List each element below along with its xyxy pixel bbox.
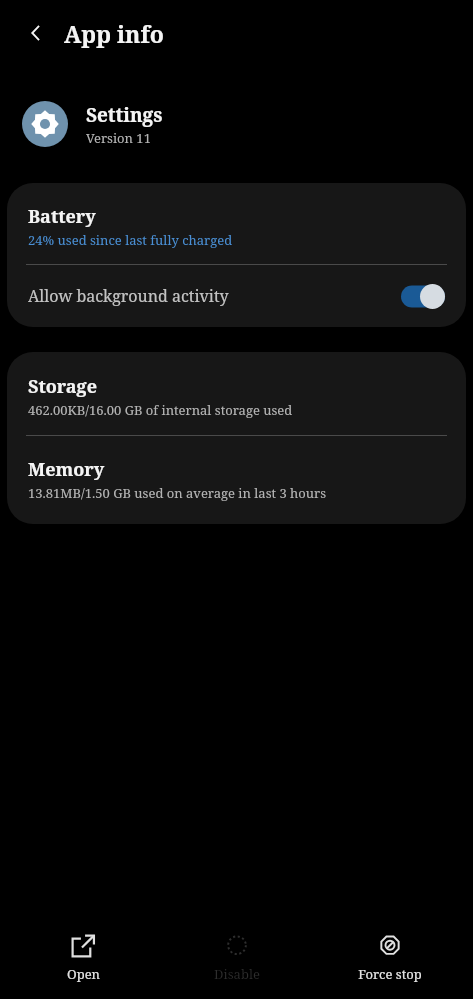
staticText: 13.81MB/1.50 GB used on average in last …: [28, 484, 327, 502]
staticText: Disable: [214, 965, 260, 983]
button[interactable]: Battery: [7, 183, 466, 264]
button[interactable]: Settings: [22, 101, 473, 147]
staticText: Open: [67, 965, 100, 983]
staticText: Force stop: [358, 965, 422, 983]
button[interactable]: Memory: [7, 436, 466, 524]
button[interactable]: Storage: [7, 352, 466, 435]
button[interactable]: Open: [13, 927, 153, 989]
staticText: Storage: [28, 374, 97, 399]
staticText: Version 11: [86, 129, 151, 147]
staticText: App info: [64, 18, 164, 49]
button[interactable]: Allow background activity: [7, 265, 466, 327]
staticText: 462.00KB/16.00 GB of internal storage us…: [28, 401, 293, 419]
button[interactable]: Back: [14, 11, 58, 55]
button[interactable]: Disable: [167, 927, 307, 989]
staticText: Allow background activity: [28, 285, 401, 307]
staticText: Settings: [86, 102, 163, 128]
staticText: 24% used since last fully charged: [28, 231, 233, 249]
staticText: Battery: [28, 204, 96, 229]
staticText: Memory: [28, 457, 105, 482]
button[interactable]: Force stop: [320, 927, 460, 989]
